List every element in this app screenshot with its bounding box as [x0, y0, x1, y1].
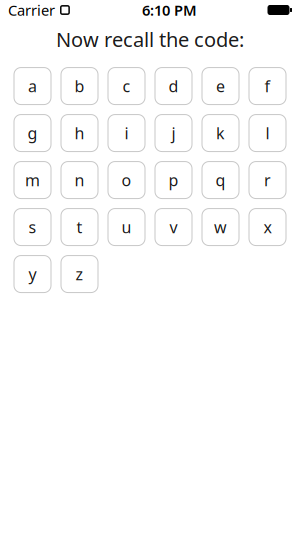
staticText: Carrier: [8, 0, 55, 20]
staticText: f: [264, 75, 270, 97]
button[interactable]: h: [61, 115, 98, 152]
staticText: o: [121, 169, 131, 191]
button[interactable]: s: [14, 209, 51, 246]
button[interactable]: f: [249, 68, 286, 105]
staticText: s: [28, 216, 36, 238]
button[interactable]: r: [249, 162, 286, 199]
button[interactable]: j: [155, 115, 192, 152]
staticText: w: [214, 216, 227, 238]
staticText: h: [74, 122, 84, 144]
staticText: g: [27, 122, 37, 144]
staticText: y: [28, 263, 36, 285]
button[interactable]: b: [61, 68, 98, 105]
staticText: 6:10 PM: [142, 0, 197, 20]
staticText: k: [216, 122, 225, 144]
button[interactable]: y: [14, 256, 51, 293]
staticText: b: [74, 75, 84, 97]
staticText: e: [216, 75, 225, 97]
button[interactable]: o: [108, 162, 145, 199]
button[interactable]: v: [155, 209, 192, 246]
button[interactable]: e: [202, 68, 239, 105]
button[interactable]: d: [155, 68, 192, 105]
button[interactable]: a: [14, 68, 51, 105]
button[interactable]: i: [108, 115, 145, 152]
button[interactable]: c: [108, 68, 145, 105]
staticText: j: [171, 122, 175, 144]
staticText: m: [25, 169, 40, 191]
staticText: x: [263, 216, 271, 238]
button[interactable]: n: [61, 162, 98, 199]
staticText: p: [168, 169, 178, 191]
staticText: z: [75, 263, 83, 285]
button[interactable]: q: [202, 162, 239, 199]
button[interactable]: l: [249, 115, 286, 152]
staticText: r: [264, 169, 271, 191]
staticText: l: [265, 122, 269, 144]
button[interactable]: t: [61, 209, 98, 246]
staticText: v: [169, 216, 177, 238]
staticText: q: [215, 169, 225, 191]
button[interactable]: u: [108, 209, 145, 246]
button[interactable]: m: [14, 162, 51, 199]
button[interactable]: z: [61, 256, 98, 293]
button[interactable]: p: [155, 162, 192, 199]
staticText: a: [28, 75, 37, 97]
button[interactable]: g: [14, 115, 51, 152]
staticText: c: [122, 75, 130, 97]
staticText: n: [74, 169, 84, 191]
staticText: Now recall the code:: [56, 26, 244, 53]
button[interactable]: w: [202, 209, 239, 246]
staticText: u: [121, 216, 131, 238]
staticText: d: [168, 75, 178, 97]
staticText: i: [124, 122, 128, 144]
staticText: t: [76, 216, 82, 238]
button[interactable]: x: [249, 209, 286, 246]
button[interactable]: k: [202, 115, 239, 152]
